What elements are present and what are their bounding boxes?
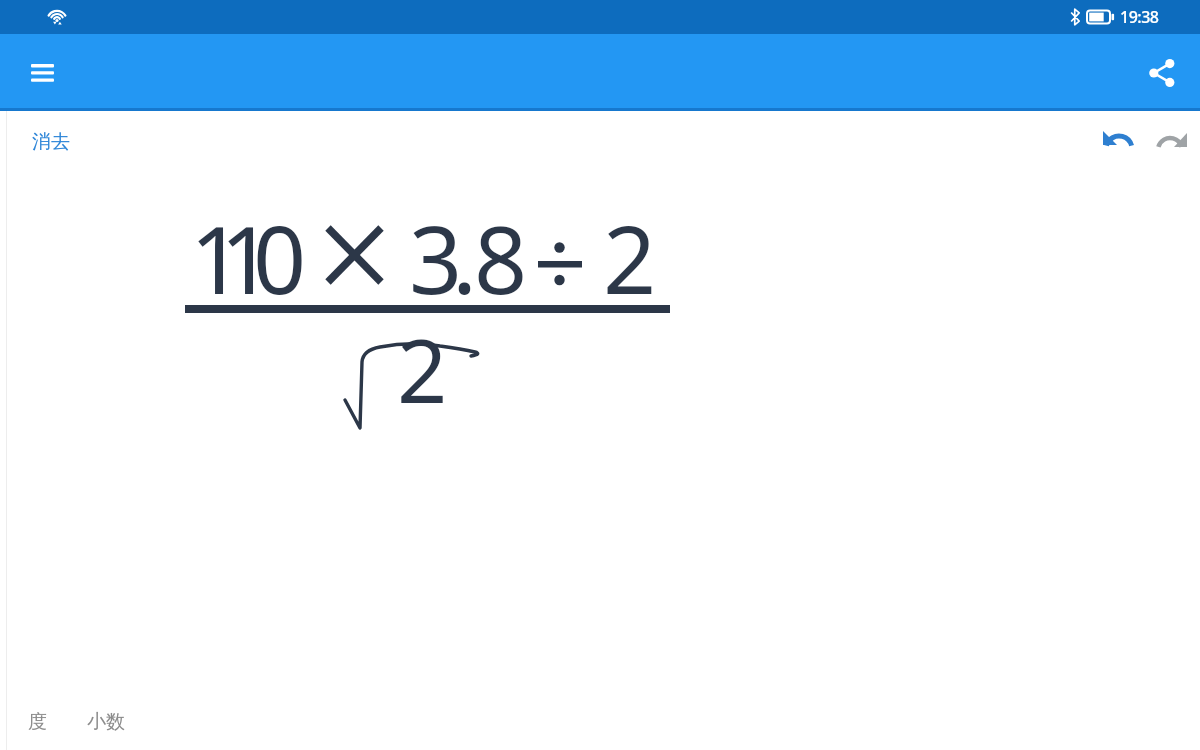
staticText: 8: [474, 195, 528, 322]
staticText: 度: [28, 710, 47, 734]
staticText: 小数: [87, 710, 125, 734]
staticText: 19:38: [1120, 6, 1159, 28]
button[interactable]: 度: [14, 700, 61, 744]
button[interactable]: [18, 49, 66, 97]
staticText: 2: [603, 195, 657, 322]
staticText: 0: [253, 195, 307, 322]
staticText: .: [452, 195, 477, 322]
staticText: 1: [190, 195, 244, 322]
button[interactable]: [1096, 121, 1142, 161]
button[interactable]: [1138, 49, 1186, 97]
button[interactable]: 消去: [20, 118, 82, 166]
staticText: 消去: [32, 130, 70, 154]
staticText: 1: [220, 195, 274, 322]
staticText: 2: [397, 309, 448, 429]
button[interactable]: [1150, 124, 1194, 162]
staticText: 3: [409, 195, 463, 322]
button[interactable]: 小数: [75, 700, 137, 744]
